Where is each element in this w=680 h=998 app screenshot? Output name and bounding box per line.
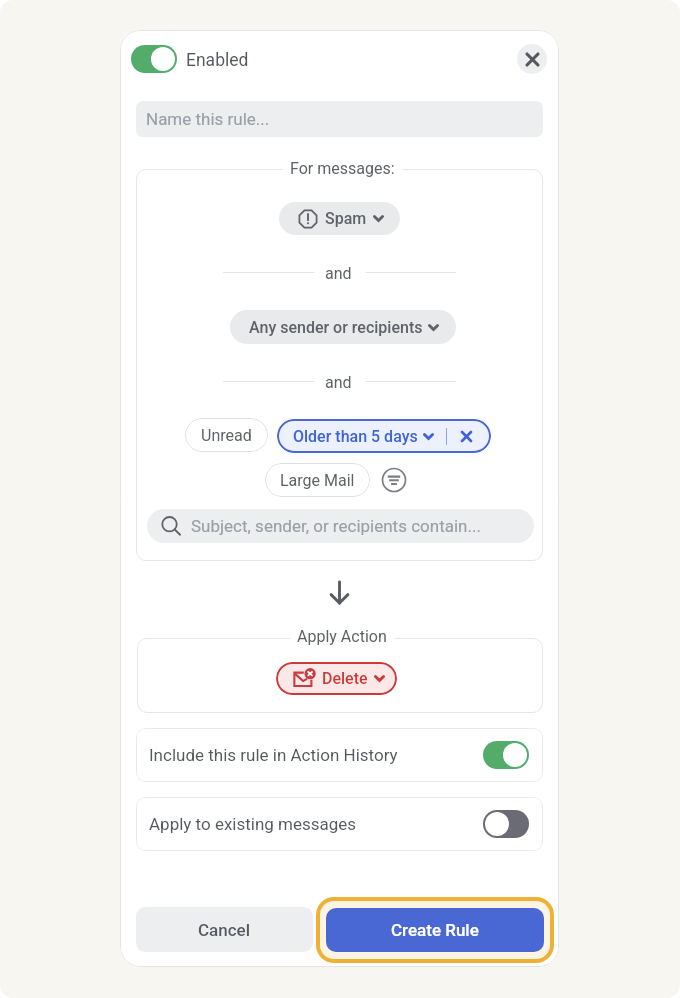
button[interactable]: Delete (276, 662, 397, 695)
button[interactable]: Toggle on (483, 741, 529, 769)
button[interactable]: Apply to existing messages (136, 797, 543, 851)
staticText: Apply Action (297, 627, 387, 646)
staticText: Enabled (186, 50, 249, 71)
staticText: Unread (201, 426, 252, 445)
staticText: and (325, 373, 352, 392)
staticText: For messages: (290, 159, 395, 178)
button[interactable]: Older than 5 days (277, 419, 491, 453)
button[interactable]: Toggle on (131, 45, 177, 73)
staticText: Cancel (198, 920, 251, 940)
button[interactable]: Spam (279, 202, 400, 235)
button[interactable]: Name this rule... (136, 101, 543, 137)
button[interactable]: Large Mail (265, 463, 370, 497)
button[interactable]: Cancel (136, 907, 313, 952)
staticText: Include this rule in Action History (149, 745, 398, 765)
staticText: Large Mail (280, 471, 355, 490)
button[interactable]: Toggle off (483, 810, 529, 838)
staticText: Create Rule (391, 920, 479, 940)
button[interactable]: Unread (185, 418, 268, 452)
staticText: Name this rule... (146, 109, 270, 129)
staticText: Delete (322, 669, 368, 688)
button[interactable]: Close (517, 44, 547, 74)
button[interactable]: More filters (380, 466, 408, 494)
staticText: Older than 5 days (293, 427, 418, 446)
button[interactable]: Subject, sender, or recipients contain..… (147, 509, 534, 543)
staticText: Subject, sender, or recipients contain..… (191, 516, 481, 536)
staticText: and (325, 264, 352, 283)
staticText: Any sender or recipients (249, 318, 423, 337)
button[interactable]: Create Rule (326, 908, 544, 952)
staticText: Spam (325, 209, 367, 228)
staticText: Apply to existing messages (149, 814, 357, 834)
button[interactable]: Any sender or recipients (230, 310, 456, 344)
button[interactable]: Include this rule in Action History (136, 728, 543, 782)
